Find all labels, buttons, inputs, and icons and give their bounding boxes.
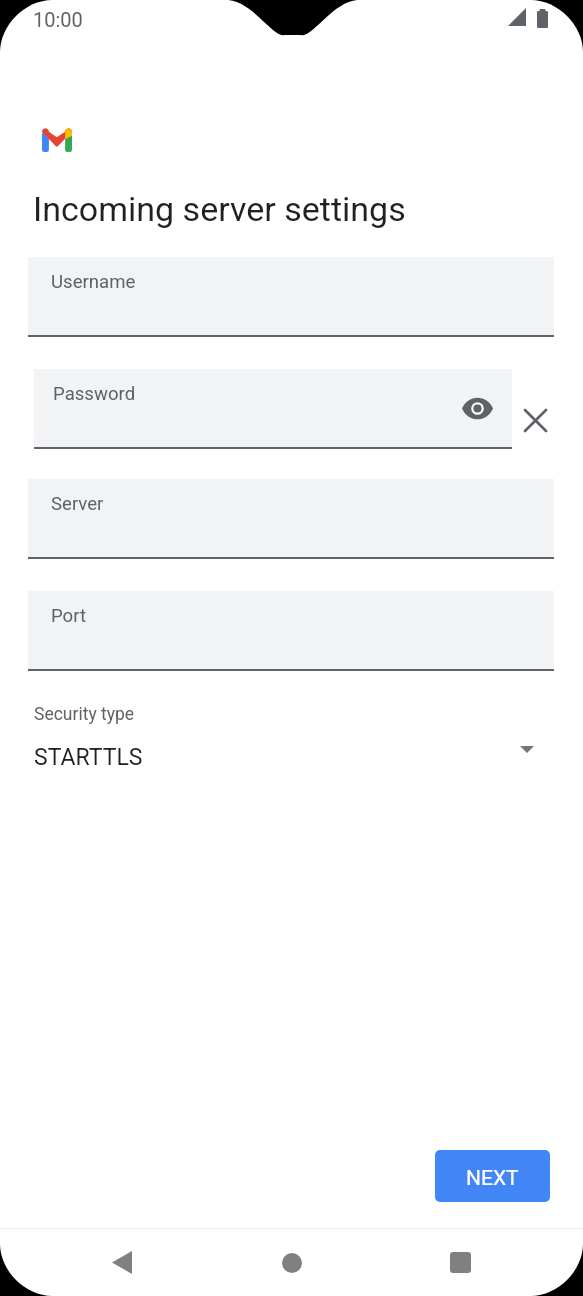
button[interactable]: Security type	[34, 704, 554, 771]
staticText: Incoming server settings	[33, 189, 406, 229]
staticText: Username	[51, 271, 136, 293]
button[interactable]: Password	[34, 369, 512, 449]
staticText: NEXT	[466, 1166, 519, 1191]
button[interactable]: Port	[28, 591, 554, 671]
button[interactable]: Show password	[456, 389, 494, 427]
button[interactable]: Home	[252, 1229, 332, 1296]
staticText: Password	[53, 383, 136, 405]
staticText: Security type	[34, 704, 135, 725]
other: Battery	[537, 9, 548, 28]
staticText: Server	[51, 493, 104, 515]
staticText: 10:00	[33, 8, 83, 31]
staticText: Port	[51, 605, 87, 627]
staticText: STARTTLS	[34, 744, 143, 771]
other: Signal strength	[508, 8, 526, 26]
button[interactable]: NEXT	[435, 1150, 550, 1202]
button[interactable]: Recents	[420, 1229, 500, 1296]
button[interactable]: Username	[28, 257, 554, 337]
button[interactable]: Back	[82, 1229, 162, 1296]
button[interactable]: Clear	[512, 369, 558, 449]
button[interactable]: Server	[28, 479, 554, 559]
